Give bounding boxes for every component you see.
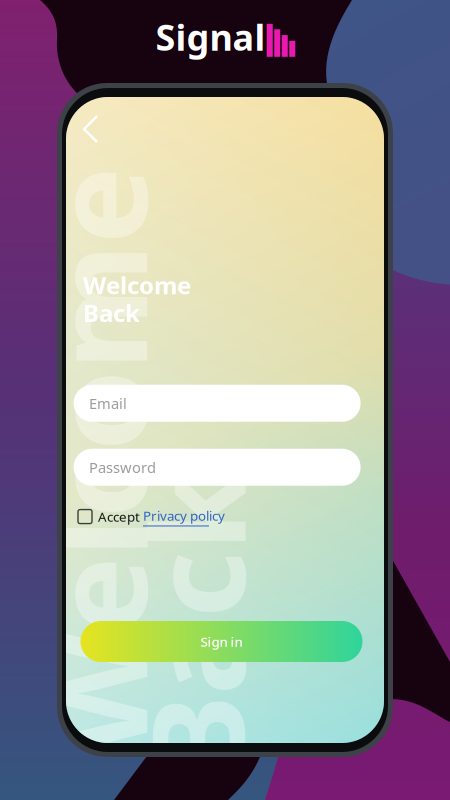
staticText: Welcome [0,347,363,519]
staticText: Sign in [200,633,242,650]
staticText: Privacy policy [143,507,225,524]
button[interactable]: Privacy policy [143,507,225,526]
staticText: Back [83,297,140,329]
button[interactable]: Email [74,385,361,422]
staticText: Back [0,372,182,544]
staticText: Welcome [83,269,191,301]
staticText: Accept [92,508,143,525]
button[interactable]: Password [74,449,361,486]
staticText: Email [89,393,127,413]
staticText: Signal [155,13,265,61]
button[interactable]: Sign in [80,621,362,662]
button[interactable]: Back [77,111,103,147]
button[interactable]: Accept terms [78,510,92,524]
staticText: Password [89,457,156,477]
